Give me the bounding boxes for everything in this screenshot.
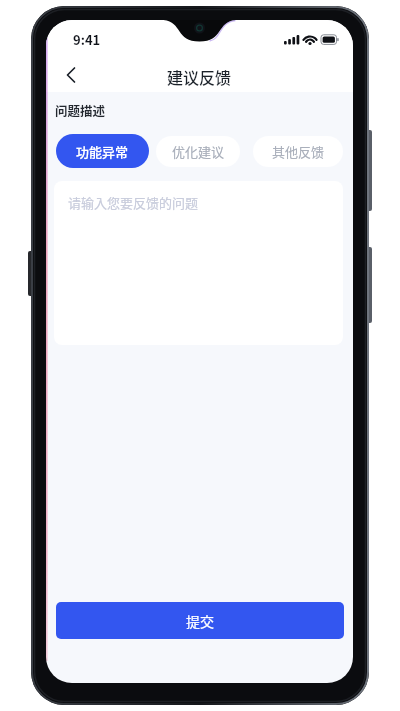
staticText: 功能异常	[76, 142, 129, 161]
staticText: 9:41	[73, 30, 101, 49]
staticText: 问题描述	[55, 101, 106, 119]
staticText: 其他反馈	[272, 142, 325, 161]
button[interactable]: 提交	[56, 602, 344, 639]
button[interactable]: 优化建议	[156, 136, 240, 167]
button[interactable]: 其他反馈	[253, 136, 343, 167]
staticText: 优化建议	[172, 142, 225, 161]
button[interactable]	[54, 58, 88, 92]
button[interactable]: 请输入您要反馈的问题	[54, 181, 343, 345]
button[interactable]: 功能异常	[56, 134, 149, 168]
staticText: 请输入您要反馈的问题	[68, 193, 199, 212]
staticText: 提交	[186, 611, 214, 631]
staticText: 建议反馈	[167, 65, 232, 88]
